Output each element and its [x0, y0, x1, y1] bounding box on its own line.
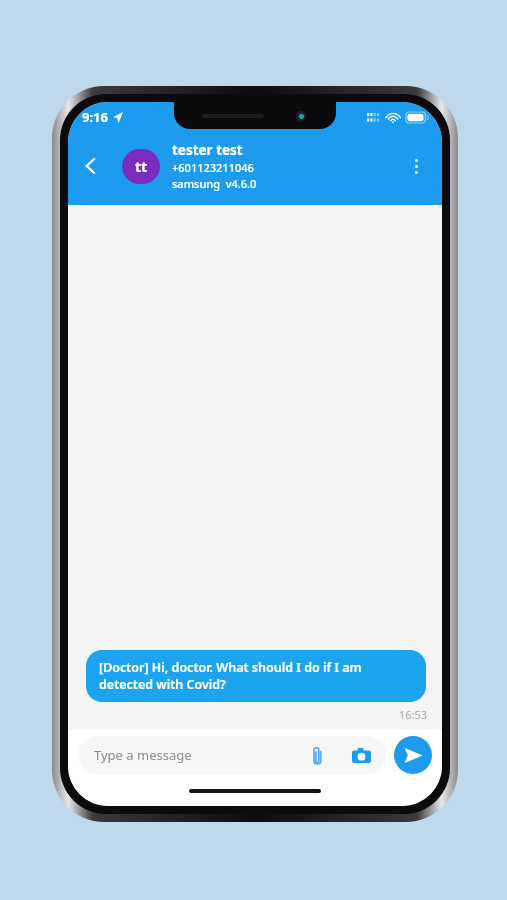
button[interactable]: tt — [122, 149, 160, 184]
button[interactable]: Type a message — [78, 736, 386, 774]
staticText: tester test — [172, 141, 243, 159]
button[interactable]: Camera — [346, 740, 376, 770]
staticText: tt — [135, 157, 148, 176]
staticText: [Doctor] Hi, doctor. What should I do if… — [99, 659, 413, 693]
button[interactable]: [Doctor] Hi, doctor. What should I do if… — [86, 650, 426, 702]
staticText: +601123211046 — [172, 160, 254, 175]
staticText: Type a message — [94, 746, 192, 764]
staticText: 16:53 — [399, 707, 428, 722]
button[interactable]: Attach file — [302, 740, 332, 770]
staticText: samsung v4.6.0 — [172, 176, 257, 191]
staticText: 9:16 — [82, 108, 108, 126]
button[interactable]: Back — [68, 143, 114, 189]
button[interactable]: Send — [394, 736, 432, 774]
button[interactable]: More options — [394, 144, 438, 188]
